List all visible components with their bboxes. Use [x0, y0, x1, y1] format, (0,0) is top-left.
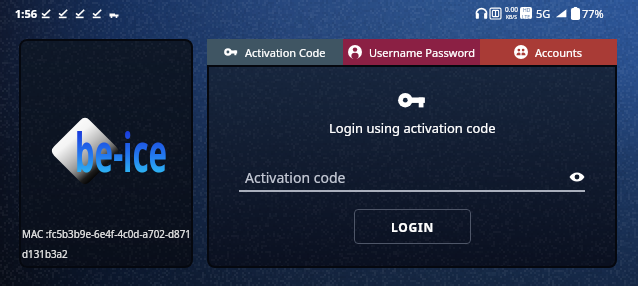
button[interactable]: Activation Code: [207, 39, 343, 65]
staticText: LOGIN: [391, 219, 435, 235]
staticText: 5G: [536, 6, 551, 21]
staticText: Accounts: [535, 45, 583, 60]
staticText: 77%: [582, 6, 604, 21]
staticText: 0.00: [505, 5, 518, 14]
button[interactable]: LOGIN: [354, 209, 471, 244]
staticText: Login using activation code: [329, 119, 496, 137]
staticText: be-ice: [75, 114, 167, 188]
staticText: HD: [523, 7, 531, 14]
staticText: LTE: [522, 14, 531, 19]
staticText: Activation code: [245, 168, 346, 187]
button[interactable]: Accounts: [480, 39, 617, 65]
staticText: Username Password: [369, 45, 476, 60]
staticText: KB/S: [506, 14, 517, 21]
staticText: 1:56: [15, 6, 37, 21]
button[interactable]: Username Password: [343, 39, 480, 65]
button[interactable]: Show activation code: [569, 169, 585, 185]
staticText: MAC :fc5b3b9e-6e4f-4c0d-a702-d871 d131b3…: [22, 227, 191, 261]
staticText: Activation Code: [245, 45, 326, 60]
